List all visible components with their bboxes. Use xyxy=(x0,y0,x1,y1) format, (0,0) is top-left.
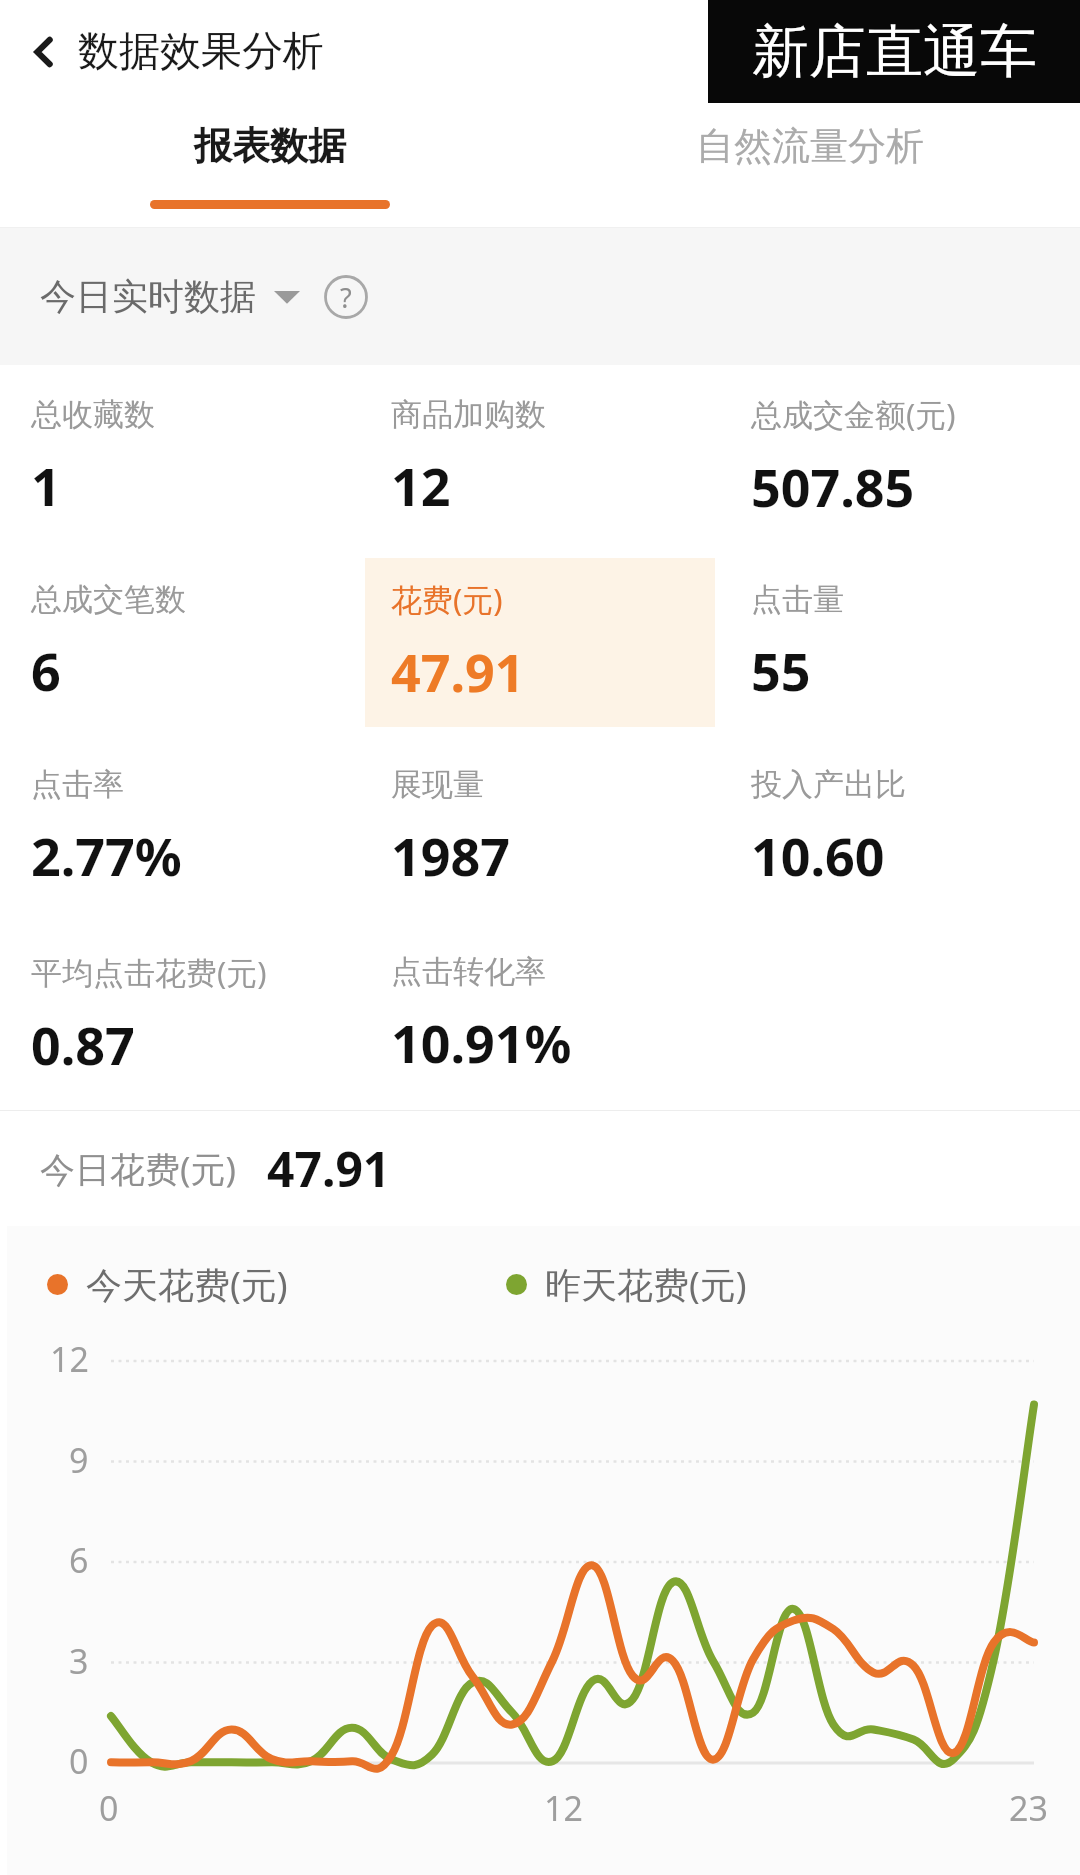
button[interactable]: 自然流量分析 xyxy=(540,103,1080,228)
button[interactable]: 平均点击花费(元) xyxy=(5,928,355,1102)
button[interactable]: 点击转化率 xyxy=(365,928,715,1102)
staticText: 新店直通车 xyxy=(752,16,1037,88)
staticText: 2.77% xyxy=(31,820,182,891)
button[interactable]: Help xyxy=(324,275,368,319)
button[interactable]: 总成交笔数 xyxy=(5,558,355,727)
staticText: 0 xyxy=(69,1738,89,1784)
staticText: 总收藏数 xyxy=(31,395,155,434)
button[interactable]: 商品加购数 xyxy=(365,373,715,542)
button[interactable]: 投入产出比 xyxy=(725,743,1075,912)
staticText: 平均点击花费(元) xyxy=(31,951,267,993)
staticText: 12 xyxy=(50,1336,89,1382)
staticText: 点击量 xyxy=(751,580,844,619)
button[interactable]: 报表数据 xyxy=(0,103,540,228)
staticText: 507.85 xyxy=(751,451,915,522)
button[interactable]: 新店直通车 xyxy=(708,0,1080,103)
button[interactable]: Back xyxy=(22,16,334,88)
staticText: 商品加购数 xyxy=(391,395,546,434)
staticText: 23 xyxy=(1009,1785,1048,1831)
staticText: 花费(元) xyxy=(391,578,503,620)
button[interactable]: 点击率 xyxy=(5,743,355,912)
staticText: 0 xyxy=(99,1785,119,1831)
staticText: 昨天花费(元) xyxy=(545,1260,747,1309)
staticText: 55 xyxy=(751,635,811,706)
button[interactable]: 总成交金额(元) xyxy=(725,373,1075,542)
button[interactable]: 展现量 xyxy=(365,743,715,912)
staticText: 0.87 xyxy=(31,1009,135,1080)
other: Back xyxy=(32,34,56,70)
staticText: 3 xyxy=(69,1638,89,1684)
staticText: 12 xyxy=(391,450,451,521)
staticText: 报表数据 xyxy=(194,122,346,170)
button[interactable]: 今日实时数据 xyxy=(30,266,310,327)
staticText: 10.91% xyxy=(391,1007,572,1078)
button[interactable]: 花费(元) xyxy=(365,558,715,727)
button[interactable]: 今天花费(元) xyxy=(47,1260,288,1309)
staticText: 12 xyxy=(544,1785,583,1831)
staticText: 9 xyxy=(69,1437,89,1483)
staticText: 点击率 xyxy=(31,765,124,804)
staticText: 数据效果分析 xyxy=(78,26,324,78)
staticText: 6 xyxy=(69,1537,89,1583)
staticText: 47.91 xyxy=(391,636,525,707)
button[interactable]: 昨天花费(元) xyxy=(506,1260,747,1309)
staticText: 自然流量分析 xyxy=(696,122,924,170)
staticText: 今天花费(元) xyxy=(86,1260,288,1309)
staticText: 今日实时数据 xyxy=(40,274,256,319)
staticText: 6 xyxy=(31,635,61,706)
staticText: 总成交金额(元) xyxy=(751,393,956,435)
staticText: ? xyxy=(340,279,352,316)
staticText: 1 xyxy=(31,450,61,521)
staticText: 47.91 xyxy=(267,1136,391,1201)
staticText: 1987 xyxy=(391,820,510,891)
staticText: 总成交笔数 xyxy=(31,580,186,619)
staticText: 点击转化率 xyxy=(391,952,546,991)
button[interactable]: 点击量 xyxy=(725,558,1075,727)
staticText: 投入产出比 xyxy=(751,765,906,804)
button[interactable]: 总收藏数 xyxy=(5,373,355,542)
staticText: 10.60 xyxy=(751,820,885,891)
staticText: 展现量 xyxy=(391,765,484,804)
staticText: 今日花费(元) xyxy=(40,1145,237,1193)
